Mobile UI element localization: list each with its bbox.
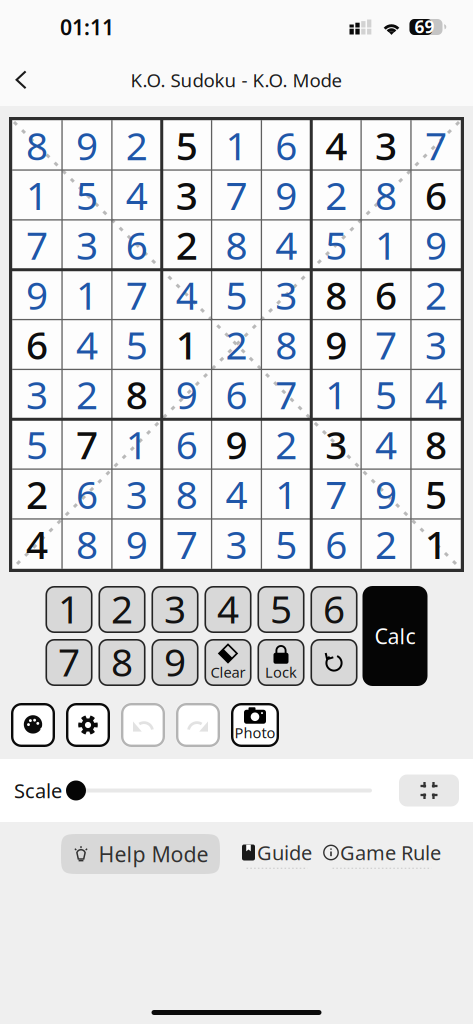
staticText: 2 — [325, 169, 347, 221]
staticText: 1 — [375, 219, 397, 270]
staticText: 5 — [375, 369, 397, 420]
button[interactable]: Calc — [362, 586, 427, 686]
staticText: 1 — [176, 319, 198, 370]
staticText: 3 — [164, 583, 186, 634]
button[interactable]: 5 — [257, 586, 304, 633]
staticText: 2 — [26, 468, 48, 520]
staticText: 6 — [323, 583, 345, 634]
staticText: 2 — [111, 583, 133, 634]
staticText: 3 — [375, 119, 397, 171]
staticText: 5 — [275, 518, 297, 569]
staticText: 5 — [325, 219, 347, 270]
staticText: Photo — [234, 723, 275, 742]
staticText: 7 — [126, 269, 148, 320]
staticText: 9 — [26, 269, 48, 320]
button[interactable]: 4 — [204, 586, 251, 633]
staticText: 7 — [58, 636, 80, 687]
staticText: 8 — [325, 269, 347, 320]
staticText: 4 — [76, 319, 98, 370]
staticText: 8 — [126, 369, 148, 420]
staticText: 3 — [126, 468, 148, 520]
staticText: 2 — [76, 369, 98, 420]
staticText: 2 — [375, 518, 397, 569]
staticText: 69 — [414, 15, 434, 38]
button[interactable]: 3 — [151, 586, 198, 633]
staticText: Game Rule — [340, 839, 441, 866]
button[interactable]: Redo — [176, 703, 220, 747]
button[interactable]: 7 — [45, 639, 92, 686]
staticText: 4 — [275, 219, 297, 270]
staticText: 9 — [176, 369, 198, 420]
staticText: 3 — [26, 369, 48, 420]
staticText: 2 — [275, 418, 297, 470]
staticText: 9 — [375, 468, 397, 520]
staticText: 9 — [76, 119, 98, 171]
staticText: 9 — [325, 319, 347, 370]
staticText: 4 — [217, 583, 239, 634]
staticText: 3 — [176, 169, 198, 221]
staticText: Lock — [265, 662, 297, 682]
button[interactable]: Game Rule — [323, 839, 441, 869]
staticText: 1 — [58, 583, 80, 634]
staticText: 7 — [26, 219, 48, 270]
staticText: 5 — [225, 269, 247, 320]
staticText: 6 — [176, 418, 198, 470]
staticText: 6 — [325, 518, 347, 569]
button[interactable]: Colors — [11, 703, 55, 747]
button[interactable]: 1 — [45, 586, 92, 633]
staticText: 1 — [76, 269, 98, 320]
staticText: 2 — [425, 269, 447, 320]
button[interactable]: 6 — [310, 586, 357, 633]
staticText: 3 — [325, 418, 347, 470]
staticText: 4 — [176, 269, 198, 320]
button[interactable]: Lock — [257, 639, 304, 686]
button[interactable]: Back — [1, 58, 41, 102]
staticText: 5 — [270, 583, 292, 634]
staticText: 6 — [425, 169, 447, 221]
staticText: 6 — [126, 219, 148, 270]
staticText: 6 — [76, 468, 98, 520]
staticText: 1 — [325, 369, 347, 420]
button[interactable]: 2 — [98, 586, 145, 633]
button[interactable] — [310, 639, 357, 686]
staticText: 4 — [425, 369, 447, 420]
button[interactable]: Photo — [231, 703, 279, 747]
staticText: 01:11 — [60, 13, 114, 41]
staticText: 4 — [126, 169, 148, 221]
button[interactable]: Guide — [242, 839, 312, 869]
staticText: 1 — [425, 518, 447, 569]
button[interactable]: Fit to screen — [399, 774, 459, 806]
staticText: 1 — [225, 119, 247, 171]
staticText: 9 — [425, 219, 447, 270]
button[interactable]: Clear — [204, 639, 251, 686]
button[interactable]: Settings — [66, 703, 110, 747]
staticText: 9 — [126, 518, 148, 569]
staticText: 7 — [225, 169, 247, 221]
staticText: 1 — [26, 169, 48, 221]
staticText: 3 — [425, 319, 447, 370]
button[interactable]: 9 — [151, 639, 198, 686]
staticText: 5 — [425, 468, 447, 520]
button[interactable]: Undo — [121, 703, 165, 747]
staticText: 9 — [164, 636, 186, 687]
staticText: 5 — [126, 319, 148, 370]
staticText: 4 — [375, 418, 397, 470]
staticText: K.O. Sudoku - K.O. Mode — [130, 68, 342, 92]
button[interactable]: Help Mode — [61, 834, 220, 874]
staticText: 8 — [176, 468, 198, 520]
staticText: 8 — [26, 119, 48, 171]
staticText: Scale — [14, 777, 62, 804]
staticText: 3 — [76, 219, 98, 270]
button[interactable]: 8 — [98, 639, 145, 686]
staticText: 6 — [375, 269, 397, 320]
staticText: 7 — [275, 369, 297, 420]
staticText: 2 — [176, 219, 198, 270]
staticText: 9 — [225, 418, 247, 470]
staticText: 5 — [176, 119, 198, 171]
staticText: 8 — [76, 518, 98, 569]
staticText: 8 — [375, 169, 397, 221]
staticText: Guide — [257, 839, 312, 866]
staticText: 7 — [425, 119, 447, 171]
staticText: 8 — [225, 219, 247, 270]
staticText: 6 — [275, 119, 297, 171]
